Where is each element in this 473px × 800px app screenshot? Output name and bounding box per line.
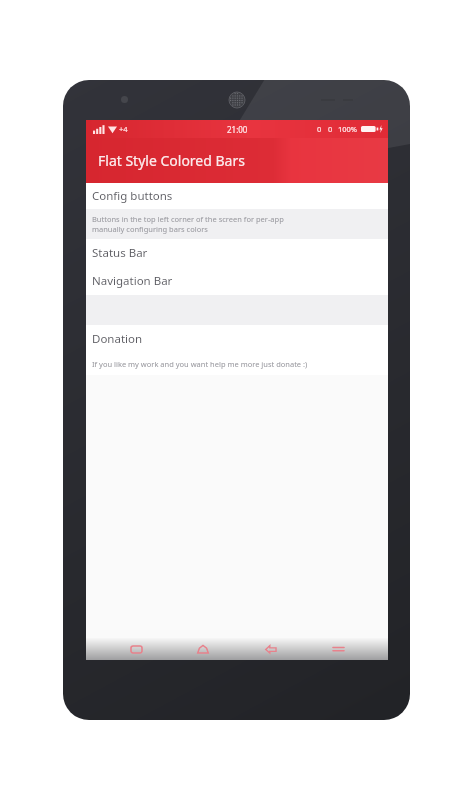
- button[interactable]: Back: [254, 638, 288, 660]
- staticText: 100%: [338, 124, 358, 134]
- staticText: Status Bar: [92, 245, 148, 261]
- button[interactable]: Home: [186, 638, 220, 660]
- staticText: 21:00: [227, 124, 248, 135]
- staticText: Donation: [92, 331, 143, 347]
- staticText: Buttons in the top left corner of the sc…: [92, 214, 284, 234]
- button[interactable]: Config buttons: [86, 183, 388, 239]
- staticText: +4: [119, 124, 128, 134]
- button[interactable]: Donation: [86, 325, 388, 375]
- staticText: 0: [317, 124, 322, 134]
- button[interactable]: Status Bar: [86, 239, 388, 267]
- staticText: If you like my work and you want help me…: [92, 359, 308, 369]
- staticText: Config buttons: [92, 188, 173, 204]
- staticText: Flat Style Colored Bars: [98, 151, 245, 170]
- staticText: Navigation Bar: [92, 273, 173, 289]
- button[interactable]: Navigation Bar: [86, 267, 388, 295]
- staticText: 0: [328, 124, 333, 134]
- button[interactable]: Menu: [321, 638, 355, 660]
- button[interactable]: Recent apps: [119, 638, 153, 660]
